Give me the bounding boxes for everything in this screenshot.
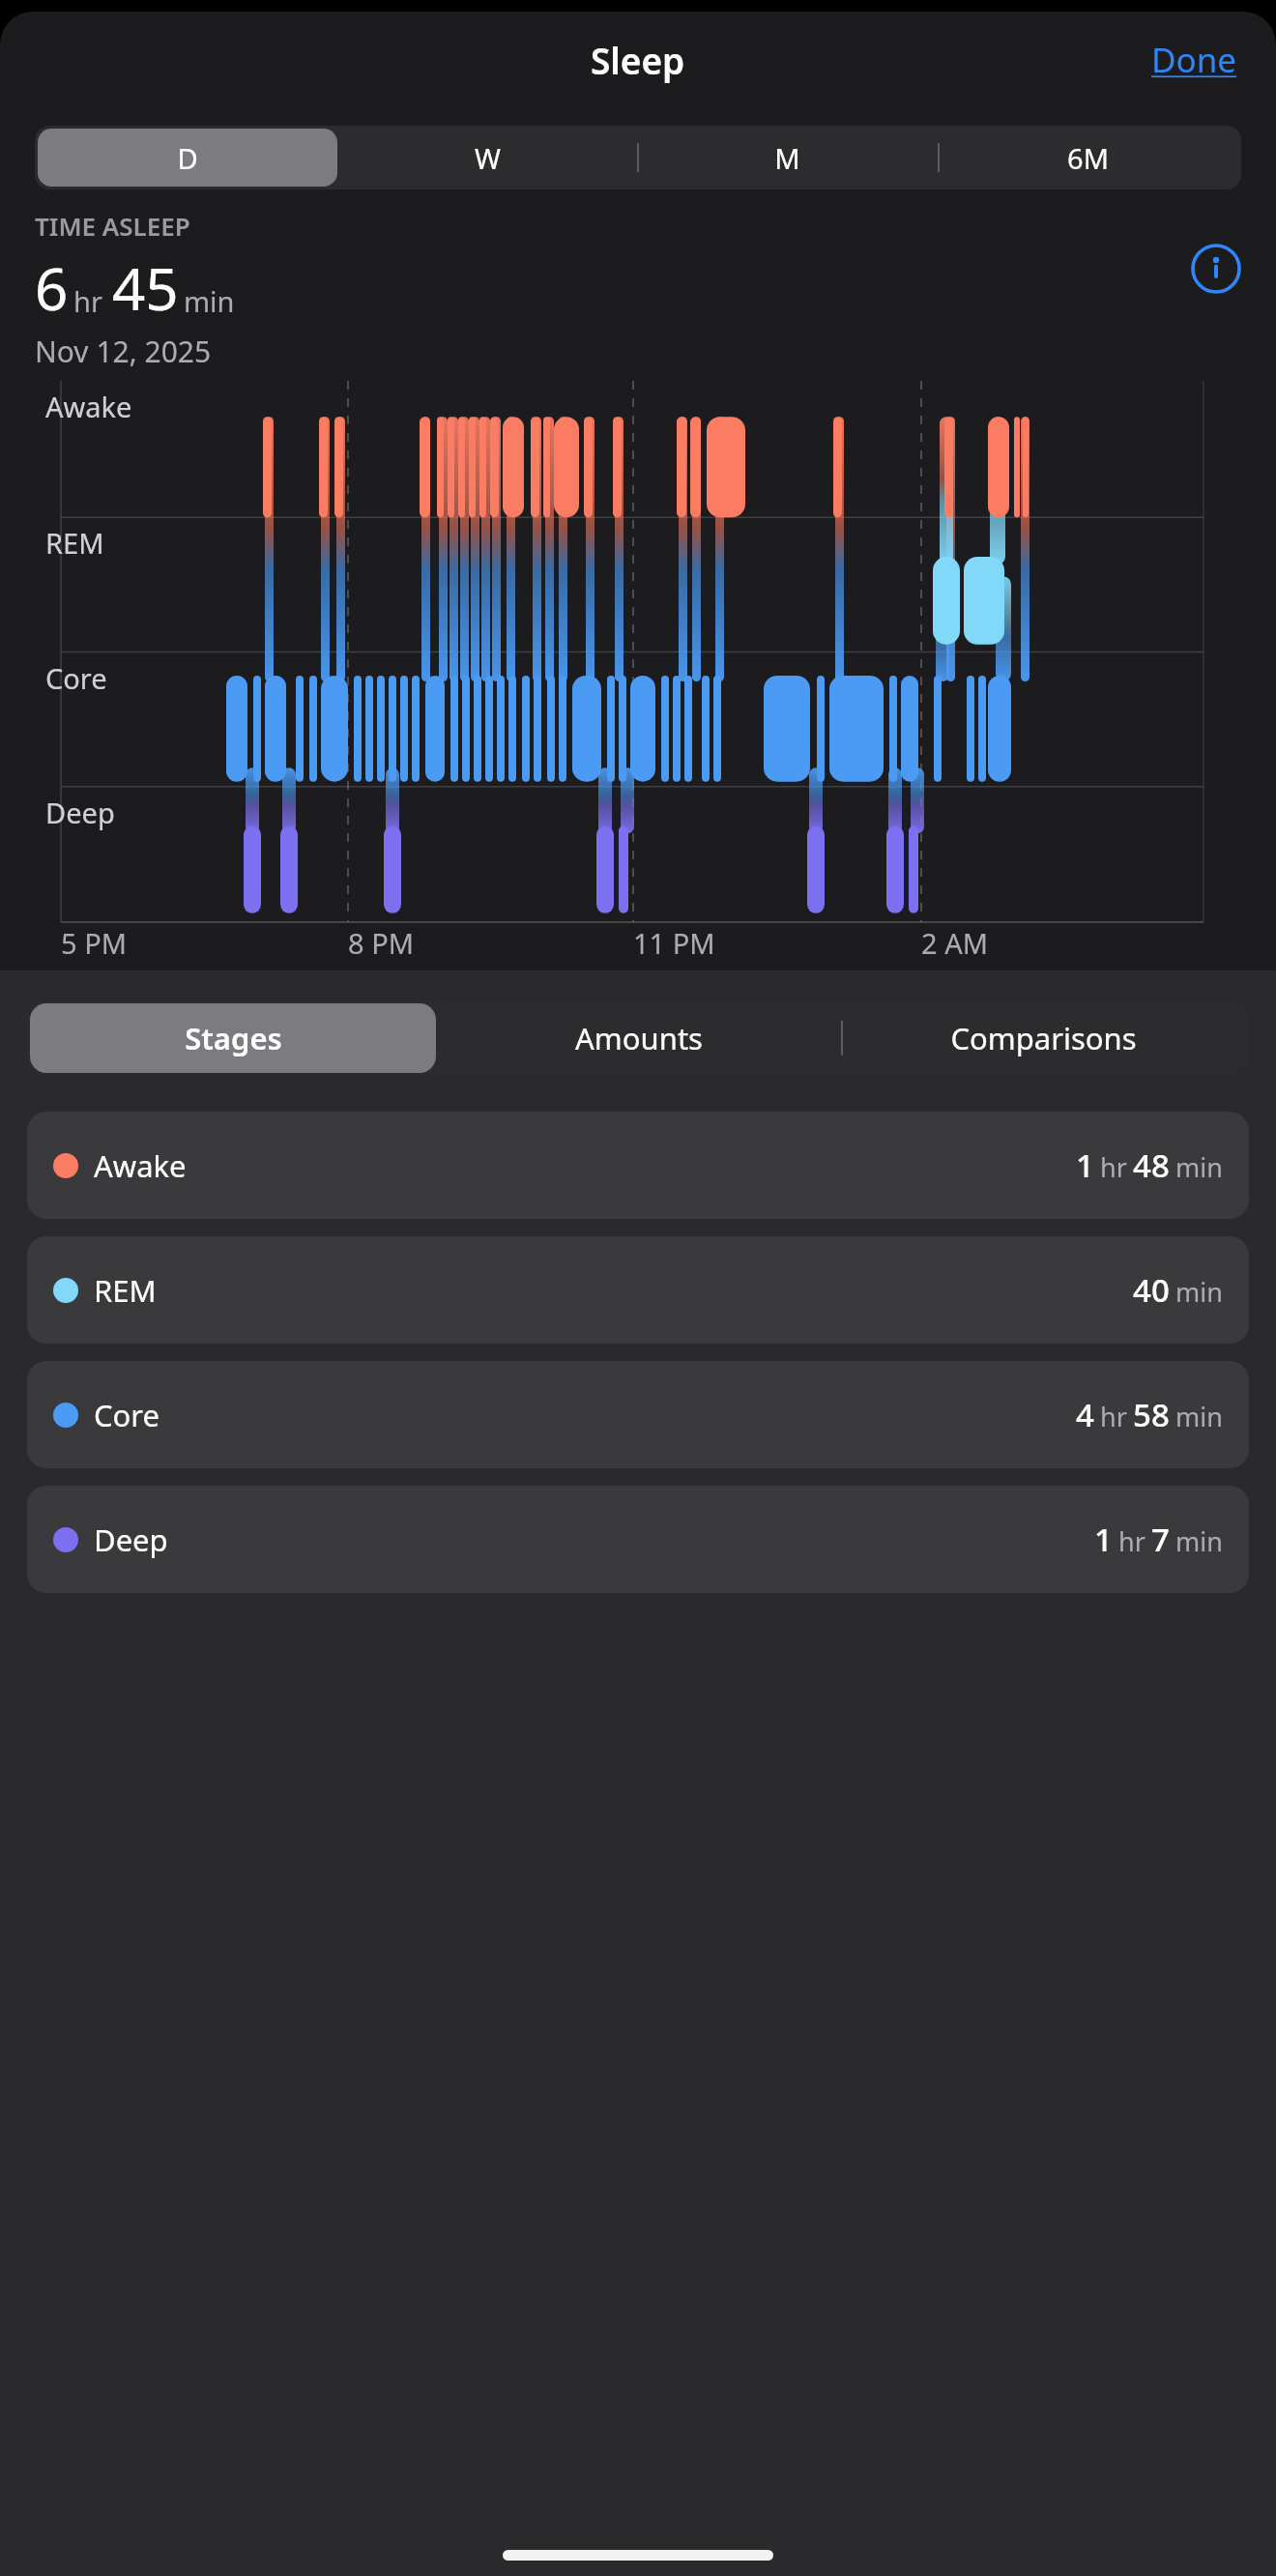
staticText: Stages <box>185 1018 282 1058</box>
staticText: 11 PM <box>633 924 715 962</box>
staticText: 4 <box>1076 1393 1094 1436</box>
button[interactable]: W <box>337 129 637 187</box>
staticText: Deep <box>45 794 115 831</box>
staticText: 6M <box>1067 139 1109 177</box>
button[interactable]: Done <box>1151 37 1237 83</box>
staticText: 40 <box>1133 1268 1170 1312</box>
staticText: min <box>1175 1149 1223 1185</box>
staticText: Comparisons <box>950 1018 1137 1058</box>
staticText: 45 <box>112 248 179 328</box>
staticText: hr <box>1118 1523 1145 1559</box>
staticText: REM <box>94 1270 157 1311</box>
staticText: hr <box>1100 1149 1127 1185</box>
staticText: min <box>1175 1274 1223 1310</box>
button[interactable]: M <box>637 129 938 187</box>
button[interactable]: Amounts <box>436 1003 841 1073</box>
button[interactable]: Comparisons <box>841 1003 1246 1073</box>
staticText: Nov 12, 2025 <box>35 332 212 371</box>
button[interactable]: About sleep data <box>1191 244 1241 294</box>
staticText: Amounts <box>575 1018 703 1058</box>
button[interactable]: REM <box>27 1236 1249 1344</box>
button[interactable]: Deep <box>27 1486 1249 1593</box>
staticText: REM <box>45 524 104 562</box>
button[interactable]: Stages <box>30 1003 436 1073</box>
staticText: Awake <box>94 1145 187 1186</box>
staticText: min <box>1175 1399 1223 1434</box>
button[interactable]: Core <box>27 1361 1249 1468</box>
staticText: min <box>1175 1523 1223 1559</box>
staticText: 7 <box>1151 1518 1170 1561</box>
staticText: TIME ASLEEP <box>35 209 190 243</box>
button[interactable]: 6M <box>938 129 1238 187</box>
staticText: 1 <box>1076 1143 1094 1187</box>
staticText: 6 <box>35 248 69 328</box>
staticText: hr <box>1100 1399 1127 1434</box>
staticText: Done <box>1151 37 1237 83</box>
staticText: Awake <box>45 388 132 425</box>
staticText: 48 <box>1133 1143 1170 1187</box>
button[interactable]: D <box>38 129 337 187</box>
staticText: 58 <box>1133 1393 1170 1436</box>
staticText: Core <box>45 659 107 697</box>
staticText: Deep <box>94 1520 168 1560</box>
button[interactable]: Awake <box>27 1112 1249 1219</box>
staticText: 8 PM <box>348 924 414 962</box>
staticText: Core <box>94 1395 160 1435</box>
staticText: Sleep <box>591 36 685 84</box>
staticText: 2 AM <box>921 924 988 962</box>
staticText: hr <box>73 282 102 320</box>
staticText: D <box>177 139 198 177</box>
staticText: M <box>774 139 800 177</box>
staticText: 5 PM <box>61 924 127 962</box>
staticText: W <box>475 139 501 177</box>
staticText: min <box>184 282 235 320</box>
staticText: 1 <box>1094 1518 1113 1561</box>
